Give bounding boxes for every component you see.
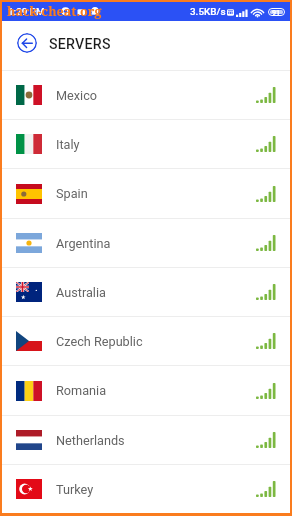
button[interactable]: Netherlands xyxy=(2,415,290,464)
staticText: Czech Republic xyxy=(56,334,143,349)
button[interactable]: Mexico xyxy=(2,70,290,119)
button[interactable]: Argentina xyxy=(2,218,290,267)
staticText: 3.5KB/s xyxy=(190,6,226,18)
button[interactable]: Back xyxy=(17,33,37,53)
staticText: Netherlands xyxy=(56,433,125,448)
button[interactable]: Australia xyxy=(2,267,290,316)
staticText: Spain xyxy=(56,186,88,201)
staticText: 1:29 PM xyxy=(8,6,45,17)
staticText: Mexico xyxy=(56,88,98,103)
button[interactable]: Spain xyxy=(2,168,290,218)
staticText: Australia xyxy=(56,285,106,300)
staticText: 91 xyxy=(272,8,281,16)
staticText: Turkey xyxy=(56,482,94,497)
button[interactable]: Italy xyxy=(2,119,290,168)
staticText: Italy xyxy=(56,137,80,152)
staticText: Romania xyxy=(56,383,107,398)
staticText: hack-cheat.org xyxy=(7,3,102,20)
button[interactable]: Czech Republic xyxy=(2,316,290,365)
button[interactable]: Romania xyxy=(2,365,290,415)
staticText: Argentina xyxy=(56,236,111,251)
button[interactable]: Turkey xyxy=(2,464,290,513)
staticText: SERVERS xyxy=(49,36,111,53)
